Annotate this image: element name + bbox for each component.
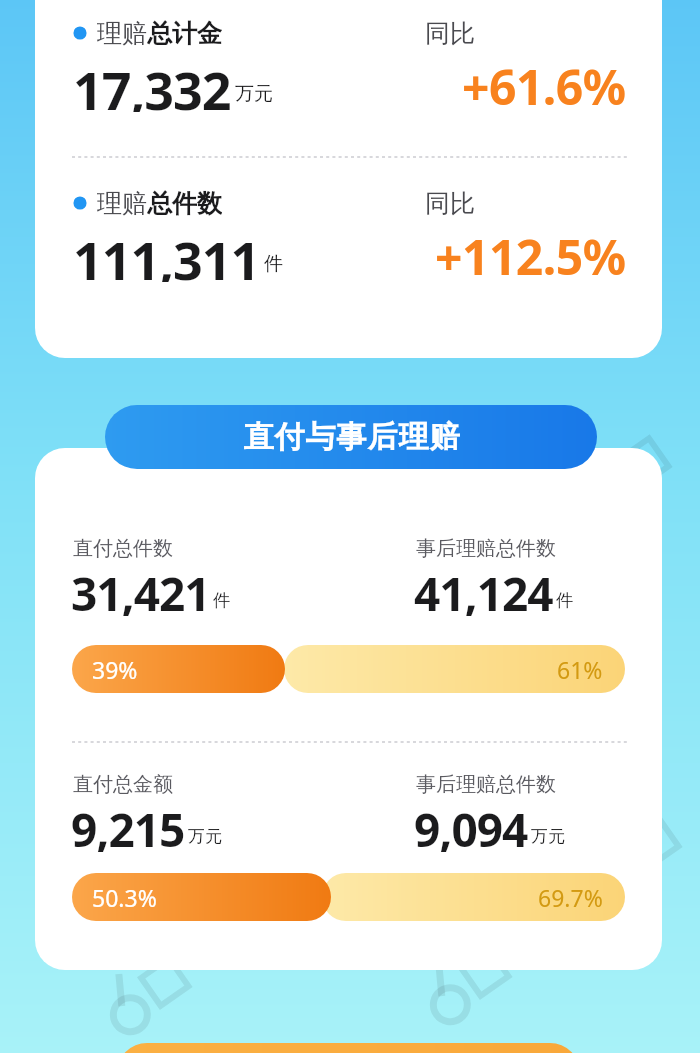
staticText: 万元 xyxy=(188,826,222,847)
staticText: 69.7% xyxy=(538,882,603,913)
button[interactable]: 理赔 xyxy=(35,0,662,358)
staticText: 件 xyxy=(556,590,573,611)
button[interactable] xyxy=(117,1043,580,1053)
staticText: 直付总金额 xyxy=(73,772,173,797)
staticText: 万元 xyxy=(531,826,565,847)
staticText: 理赔 xyxy=(97,188,147,218)
staticText: 9,094 xyxy=(414,798,528,852)
staticText: 总件数 xyxy=(147,188,222,218)
staticText: 事后理赔总件数 xyxy=(416,772,556,797)
button[interactable]: 69.7% xyxy=(72,873,625,921)
staticText: 31,421 xyxy=(71,562,210,616)
staticText: 件 xyxy=(213,590,230,611)
button[interactable]: 61% xyxy=(72,645,625,693)
staticText: 总计金 xyxy=(147,18,222,48)
staticText: 事后理赔总件数 xyxy=(416,536,556,561)
staticText: 理赔 xyxy=(97,18,147,48)
staticText: 同比 xyxy=(425,188,475,219)
staticText: 直付与事后理赔 xyxy=(243,418,460,456)
staticText: 61% xyxy=(557,654,603,685)
staticText: 直付总件数 xyxy=(73,536,173,561)
staticText: 同比 xyxy=(425,18,475,49)
staticText: 39% xyxy=(92,654,138,685)
button[interactable]: 直付与事后理赔 xyxy=(105,405,597,469)
staticText: 万元 xyxy=(235,82,273,106)
staticText: 件 xyxy=(264,252,283,276)
staticText: 9,215 xyxy=(71,798,185,852)
staticText: 17,332 xyxy=(73,54,231,112)
staticText: +112.5% xyxy=(435,224,626,282)
staticText: +61.6% xyxy=(462,54,626,112)
staticText: 50.3% xyxy=(92,882,157,913)
staticText: 111,311 xyxy=(73,224,260,282)
staticText: 41,124 xyxy=(414,562,553,616)
button[interactable]: 直付总件数 xyxy=(35,448,662,970)
